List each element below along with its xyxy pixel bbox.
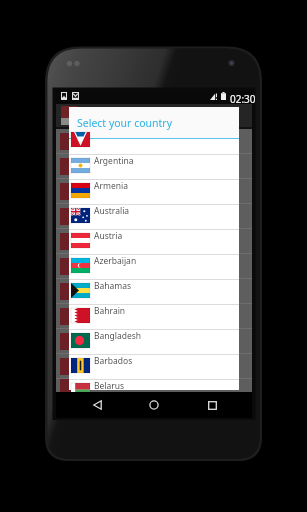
staticText: Australia [94, 205, 130, 217]
button[interactable]: Bahrain [69, 305, 239, 329]
button[interactable]: Azerbaijan [69, 255, 239, 279]
staticText: Belarus [94, 380, 125, 390]
staticText: Barbados [94, 355, 133, 367]
staticText: Bangladesh [94, 330, 142, 342]
button[interactable]: Belarus [69, 380, 239, 390]
button[interactable]: Bangladesh [69, 330, 239, 354]
button[interactable]: Back [80, 392, 114, 418]
staticText: Bahamas [94, 280, 132, 292]
button[interactable]: Barbados [69, 355, 239, 379]
button[interactable]: Recent apps [195, 392, 229, 418]
staticText: 02:30 [230, 92, 256, 106]
staticText: Select your country [77, 116, 172, 130]
button[interactable]: Belarus [69, 380, 239, 390]
button[interactable] [69, 139, 239, 154]
button[interactable]: Armenia [69, 180, 239, 204]
staticText: Argentina [94, 155, 134, 167]
button[interactable]: Bahamas [69, 280, 239, 304]
staticText: Armenia [94, 180, 128, 192]
staticText: Azerbaijan [94, 255, 137, 267]
button[interactable]: Argentina [69, 155, 239, 179]
button[interactable]: Austria [69, 230, 239, 254]
staticText: Austria [94, 230, 123, 242]
staticText: Bahrain [94, 305, 126, 317]
button[interactable]: Australia [69, 205, 239, 229]
button[interactable]: Home [137, 392, 171, 418]
